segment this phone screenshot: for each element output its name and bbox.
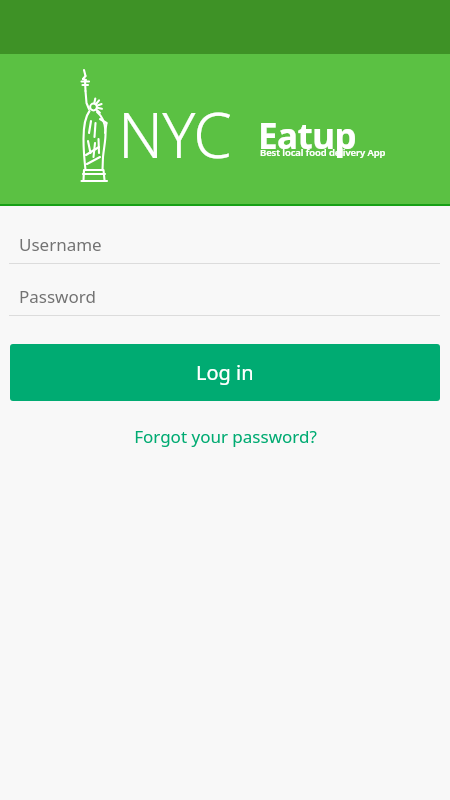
staticText: Eatup: [258, 112, 357, 160]
staticText: Password: [19, 285, 96, 308]
button[interactable]: Forgot your password?: [0, 417, 450, 455]
other: Statue of Liberty logo: [72, 67, 124, 185]
button[interactable]: Username: [0, 226, 450, 264]
staticText: Forgot your password?: [134, 425, 317, 448]
button[interactable]: Log in: [10, 344, 440, 401]
staticText: Username: [19, 233, 102, 256]
staticText: Log in: [196, 359, 254, 386]
staticText: Best local food delivery App: [260, 146, 386, 159]
staticText: NYC: [118, 92, 231, 176]
button[interactable]: Password: [0, 278, 450, 316]
